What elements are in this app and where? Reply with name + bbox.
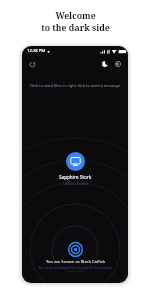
staticText: Sapphire Stork bbox=[59, 174, 92, 180]
button[interactable]: Your identity bbox=[38, 242, 113, 270]
staticText: You can be discovered by everyone on thi… bbox=[38, 266, 113, 270]
button[interactable]: Toggle dark mode bbox=[99, 58, 111, 70]
staticText: Welcome bbox=[55, 10, 96, 22]
staticText: Click to send files or right click to se… bbox=[22, 83, 128, 88]
button[interactable]: Settings bbox=[112, 58, 124, 70]
staticText: Ubuntu Firefox bbox=[63, 181, 89, 186]
button[interactable]: Sapphire Stork bbox=[55, 151, 96, 187]
button[interactable]: Refresh bbox=[26, 58, 38, 70]
staticText: 12:28 PM bbox=[27, 48, 46, 54]
staticText: You are known as Black Catfish bbox=[46, 259, 106, 265]
staticText: to the dark side bbox=[41, 22, 110, 34]
